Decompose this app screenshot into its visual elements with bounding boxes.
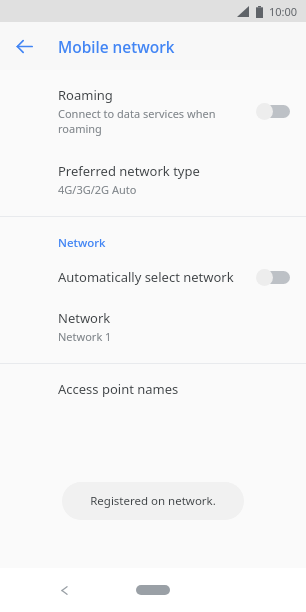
staticText: Connect to data services when roaming [58, 106, 248, 136]
staticText: Roaming [58, 86, 113, 104]
staticText: Network 1 [58, 329, 112, 344]
staticText: Preferred network type [58, 162, 200, 180]
staticText: Mobile network [58, 36, 175, 57]
staticText: Automatically select network [58, 268, 234, 286]
button[interactable]: Back [50, 576, 78, 604]
button[interactable]: Back [8, 30, 40, 62]
button[interactable]: Automatically select network [0, 265, 306, 289]
button[interactable]: Network [0, 309, 306, 352]
button[interactable]: Home [136, 585, 170, 595]
staticText: 4G/3G/2G Auto [58, 182, 137, 197]
staticText: Registered on network. [90, 493, 216, 509]
staticText: Access point names [58, 380, 179, 398]
button[interactable]: Roaming [0, 80, 306, 148]
staticText: Network [58, 309, 111, 327]
button[interactable]: Access point names [0, 378, 306, 400]
button[interactable]: Preferred network type [0, 158, 306, 207]
staticText: 10:00 [269, 4, 298, 19]
staticText: Network [58, 235, 106, 251]
